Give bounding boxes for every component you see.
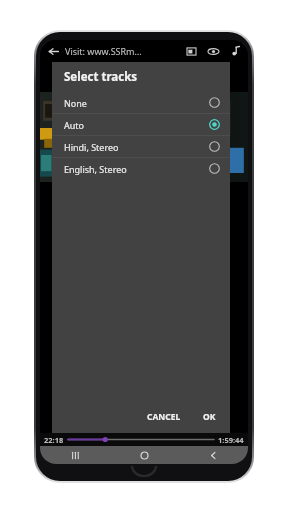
- staticText: English, Stereo: [64, 163, 127, 175]
- button[interactable]: Hindi, Stereo: [52, 136, 230, 157]
- staticText: Visit: www.SSRm…: [65, 45, 142, 57]
- button[interactable]: Picture in picture: [182, 42, 200, 60]
- button[interactable]: Audio track: [226, 42, 244, 60]
- button[interactable]: Back: [44, 42, 62, 60]
- staticText: 1:59:44: [218, 435, 244, 445]
- staticText: Hindi, Stereo: [64, 141, 119, 153]
- button[interactable]: Auto: [52, 114, 230, 135]
- button[interactable]: Back: [179, 446, 248, 464]
- staticText: Select tracks: [64, 69, 138, 85]
- button[interactable]: Home: [110, 446, 179, 464]
- staticText: OK: [203, 411, 216, 423]
- button[interactable]: CANCEL: [147, 411, 181, 423]
- button[interactable]: English, Stereo: [52, 158, 230, 179]
- button[interactable]: Subtitles visibility: [204, 42, 222, 60]
- staticText: Auto: [64, 119, 85, 131]
- button[interactable]: [68, 434, 214, 445]
- staticText: None: [64, 97, 87, 109]
- button[interactable]: None: [52, 92, 230, 113]
- staticText: CANCEL: [147, 411, 181, 423]
- button[interactable]: Recent apps: [40, 446, 110, 464]
- button[interactable]: OK: [203, 411, 216, 423]
- staticText: 22:18: [44, 435, 64, 445]
